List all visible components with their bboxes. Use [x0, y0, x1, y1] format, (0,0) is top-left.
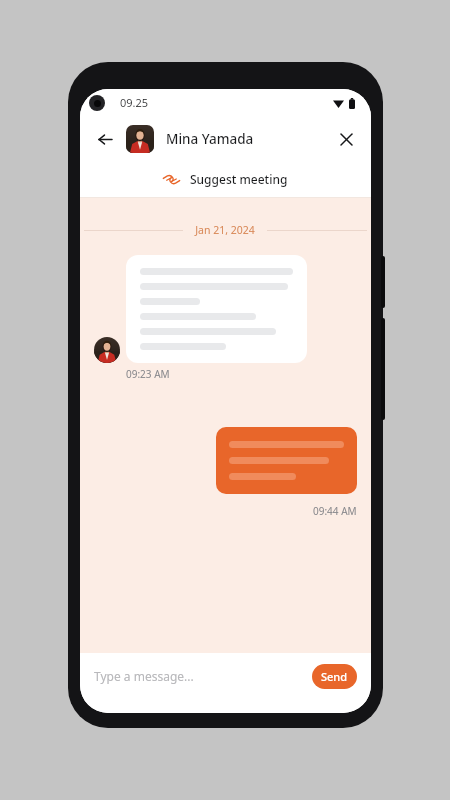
button[interactable]: Send [312, 664, 357, 689]
button[interactable]: Suggest meeting [80, 161, 371, 197]
button[interactable]: Back [92, 126, 118, 152]
staticText: Suggest meeting [190, 171, 288, 187]
button[interactable]: Type a message... [94, 656, 302, 696]
staticText: 09:44 AM [313, 504, 357, 518]
staticText: Jan 21, 2024 [195, 223, 255, 237]
staticText: Mina Yamada [166, 130, 254, 148]
button[interactable] [216, 427, 357, 494]
button[interactable]: Close [333, 126, 359, 152]
other: Volume [381, 256, 385, 308]
staticText: 09.25 [120, 95, 149, 110]
button[interactable] [126, 255, 307, 363]
staticText: Type a message... [94, 668, 194, 684]
other: Power [381, 318, 385, 420]
staticText: Send [321, 669, 348, 684]
staticText: 09:23 AM [126, 367, 170, 381]
